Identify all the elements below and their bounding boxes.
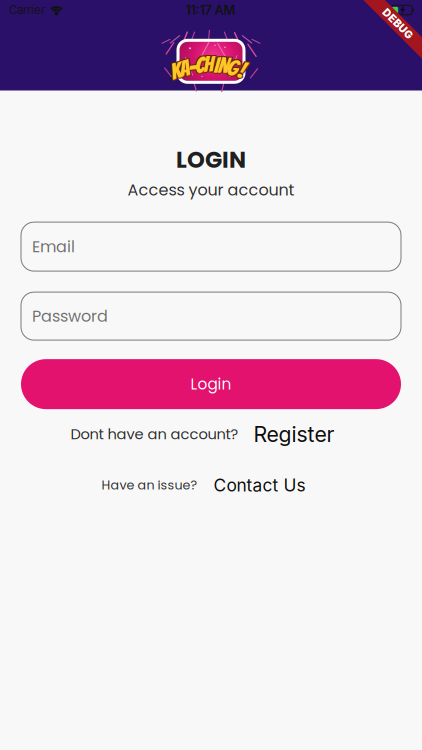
staticText: 11:17 AM — [185, 2, 235, 18]
staticText: H — [203, 54, 213, 77]
staticText: - — [187, 56, 195, 79]
button[interactable]: Contact Us — [213, 475, 305, 496]
staticText: - — [188, 55, 196, 79]
staticText: G — [227, 56, 238, 79]
staticText: N — [217, 53, 227, 76]
staticText: H — [205, 52, 215, 75]
staticText: H — [203, 53, 213, 77]
staticText: C — [196, 52, 205, 76]
staticText: G — [226, 55, 237, 78]
staticText: N — [218, 54, 228, 77]
staticText: K — [172, 59, 182, 82]
staticText: K — [172, 60, 182, 84]
staticText: Register — [253, 421, 334, 447]
staticText: - — [188, 55, 196, 78]
staticText: A — [178, 58, 188, 81]
staticText: ! — [239, 60, 245, 83]
button[interactable]: Login — [21, 359, 401, 409]
staticText: G — [226, 57, 237, 80]
staticText: A — [181, 58, 191, 81]
staticText: C — [195, 54, 204, 77]
staticText: A — [180, 57, 190, 81]
staticText: - — [190, 56, 198, 79]
staticText: Password — [32, 305, 108, 327]
staticText: I — [215, 54, 219, 77]
staticText: Carrier — [9, 3, 45, 17]
staticText: Dont have an account? — [70, 424, 238, 444]
staticText: G — [228, 57, 239, 80]
staticText: ! — [238, 59, 244, 83]
staticText: Login — [190, 373, 231, 395]
staticText: H — [205, 53, 215, 77]
staticText: A — [181, 56, 191, 79]
button[interactable]: Register — [253, 421, 334, 447]
staticText: ! — [239, 59, 245, 82]
staticText: ! — [238, 57, 244, 81]
staticText: I — [215, 52, 219, 75]
staticText: Contact Us — [213, 475, 305, 496]
staticText: A — [178, 56, 188, 79]
staticText: A — [180, 57, 190, 80]
staticText: K — [171, 59, 181, 83]
staticText: LOGIN — [176, 144, 246, 176]
staticText: G — [227, 57, 238, 80]
staticText: C — [195, 55, 204, 78]
staticText: - — [187, 54, 195, 77]
staticText: I — [214, 54, 218, 78]
staticText: I — [213, 54, 217, 77]
staticText: H — [203, 52, 213, 76]
staticText: A — [180, 58, 190, 82]
staticText: ! — [240, 57, 246, 81]
staticText: I — [214, 53, 218, 77]
staticText: Email — [32, 235, 75, 258]
staticText: N — [220, 55, 230, 78]
staticText: K — [170, 60, 180, 84]
staticText: Have an issue? — [101, 476, 197, 494]
staticText: K — [171, 60, 181, 84]
staticText: H — [202, 53, 212, 77]
staticText: ! — [240, 59, 246, 83]
staticText: I — [214, 53, 218, 76]
staticText: - — [188, 56, 196, 80]
staticText: C — [194, 52, 203, 76]
staticText: N — [218, 55, 228, 79]
staticText: I — [213, 52, 217, 75]
staticText: C — [196, 54, 205, 78]
staticText: N — [220, 53, 230, 76]
staticText: K — [171, 61, 181, 84]
staticText: Access your account — [127, 179, 294, 201]
staticText: DEBUG — [379, 17, 417, 30]
staticText: ! — [239, 58, 245, 82]
staticText: G — [228, 55, 239, 78]
staticText: G — [227, 57, 238, 81]
staticText: N — [217, 55, 227, 78]
staticText: N — [218, 54, 228, 78]
staticText: C — [195, 53, 204, 77]
staticText: - — [190, 54, 198, 77]
staticText: C — [194, 54, 203, 78]
staticText: H — [202, 52, 212, 75]
staticText: K — [170, 59, 180, 82]
